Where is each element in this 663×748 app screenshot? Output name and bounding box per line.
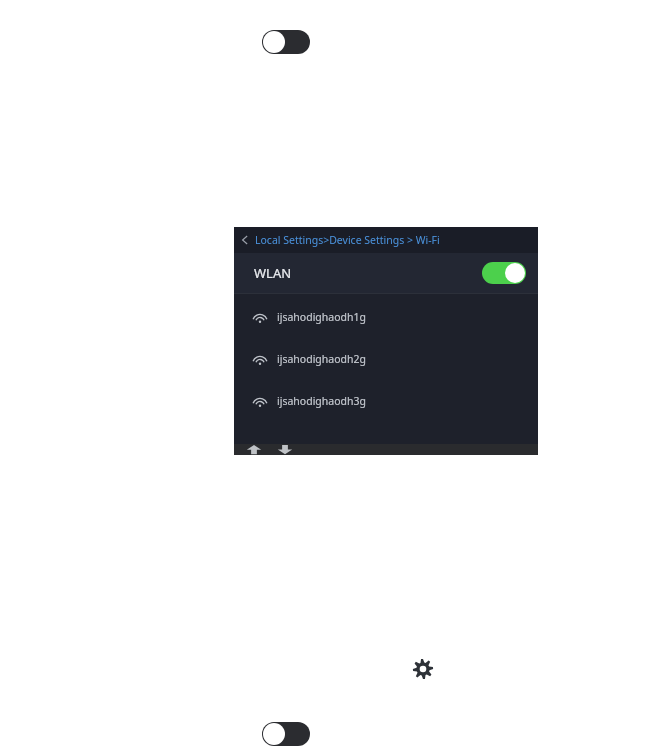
- button[interactable]: Toggle off: [262, 30, 310, 54]
- staticText: ijsahodighaodh1g: [277, 310, 366, 324]
- button[interactable]: WLAN: [234, 253, 538, 293]
- button[interactable]: ijsahodighaodh2g: [234, 343, 538, 375]
- staticText: Local Settings>Device Settings > Wi-Fi: [255, 233, 440, 247]
- other: Back: [239, 234, 251, 246]
- staticText: ijsahodighaodh3g: [277, 394, 366, 408]
- button[interactable]: Settings: [411, 657, 435, 681]
- staticText: ijsahodighaodh2g: [277, 352, 366, 366]
- button[interactable]: Toggle off: [262, 722, 310, 746]
- button[interactable]: ijsahodighaodh3g: [234, 385, 538, 417]
- staticText: WLAN: [254, 264, 292, 282]
- button[interactable]: ijsahodighaodh1g: [234, 301, 538, 333]
- button[interactable]: Scroll up: [244, 444, 264, 455]
- button[interactable]: Scroll down: [275, 444, 295, 455]
- button[interactable]: WLAN on: [482, 262, 526, 284]
- button[interactable]: Back: [234, 227, 538, 253]
